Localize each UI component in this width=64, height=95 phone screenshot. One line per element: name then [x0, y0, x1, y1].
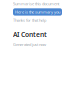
- staticText: Summarise this document: [13, 1, 59, 6]
- staticText: Thanks for that help: [13, 18, 46, 23]
- staticText: Generated just now: [13, 42, 46, 47]
- staticText: Here is the summary you: [15, 9, 60, 15]
- button[interactable]: Here is the summary you: [13, 8, 62, 16]
- staticText: AI Content: [13, 30, 47, 39]
